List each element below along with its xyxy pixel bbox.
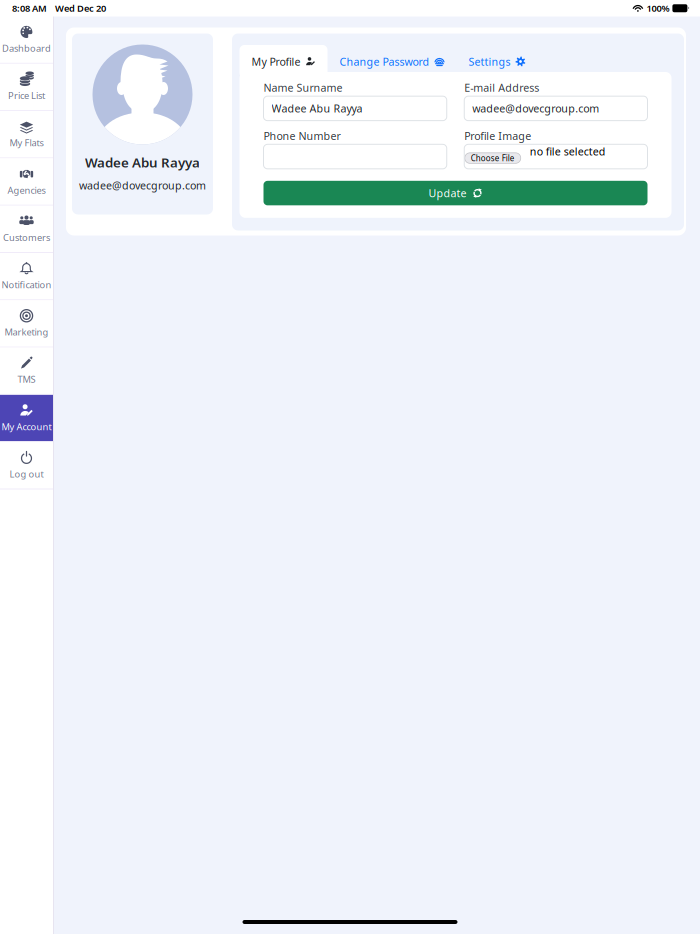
button[interactable]: My Account — [0, 395, 53, 441]
staticText: wadee@dovecgroup.com — [79, 178, 206, 192]
button[interactable]: My Flats — [0, 111, 53, 157]
button[interactable]: Change Password — [327, 48, 456, 75]
staticText: My Flats — [9, 137, 43, 149]
button[interactable]: My Profile — [239, 45, 327, 78]
staticText: Name Surname — [263, 80, 342, 95]
staticText: Phone Number — [263, 129, 340, 143]
staticText: 8:08 AM — [12, 2, 47, 14]
staticText: My Profile — [251, 54, 300, 69]
staticText: Update — [428, 186, 466, 200]
staticText: Agencies — [7, 184, 45, 196]
button[interactable]: Settings — [456, 48, 537, 75]
staticText: TMS — [17, 373, 35, 385]
staticText: E-mail Address — [464, 80, 539, 95]
staticText: 100% — [646, 2, 669, 14]
button[interactable]: Log out — [0, 442, 53, 488]
staticText: wadee@dovecgroup.com — [472, 101, 599, 115]
button[interactable]: Agencies — [0, 158, 53, 205]
staticText: Wadee Abu Rayya — [271, 101, 362, 115]
staticText: Wadee Abu Rayya — [85, 153, 200, 171]
button[interactable]: Price List — [0, 64, 53, 110]
staticText: Log out — [9, 468, 43, 480]
staticText: Profile Image — [464, 129, 531, 143]
button[interactable]: Update — [263, 181, 647, 205]
staticText: Choose File — [471, 153, 515, 163]
button[interactable]: Dashboard — [0, 16, 53, 63]
staticText: Price List — [8, 89, 45, 102]
staticText: no file selected — [530, 144, 606, 158]
staticText: Customers — [3, 231, 50, 244]
staticText: Dashboard — [2, 42, 51, 54]
button[interactable]: Marketing — [0, 300, 53, 347]
staticText: Change Password — [339, 54, 429, 69]
staticText: Settings — [468, 54, 510, 69]
button[interactable]: Choose File — [465, 153, 521, 163]
staticText: My Account — [1, 420, 51, 433]
staticText: Wed Dec 20 — [55, 2, 106, 14]
staticText: Marketing — [4, 326, 48, 338]
button[interactable]: TMS — [0, 348, 53, 394]
staticText: Notification — [1, 278, 51, 291]
button[interactable]: Notification — [0, 253, 53, 299]
button[interactable]: Customers — [0, 206, 53, 252]
